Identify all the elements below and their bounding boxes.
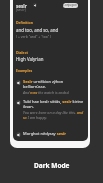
button[interactable]: Play pronunciation	[33, 3, 37, 7]
staticText: You were born on a day like this, and so…	[23, 110, 86, 120]
button[interactable]: Play pronunciation	[16, 80, 21, 85]
staticText: ( + verb "and" + "too" )	[16, 34, 52, 39]
staticText: Conjugation	[63, 3, 78, 8]
button[interactable]: Play pronunciation	[16, 131, 86, 136]
staticText: Examples	[16, 68, 33, 73]
staticText: Dark Mode	[34, 161, 70, 170]
button[interactable]: Play pronunciation	[16, 99, 86, 120]
staticText: [sesiːr]	[16, 8, 26, 12]
staticText: And now the watch is ended.	[23, 90, 70, 95]
staticText: Definition	[16, 20, 33, 25]
staticText: High Valyrian	[16, 56, 44, 62]
staticText: Dialect	[16, 50, 28, 55]
button[interactable]: Conjugation	[63, 3, 78, 8]
button[interactable]: Play pronunciation	[16, 100, 21, 105]
button[interactable]: Play pronunciation	[16, 79, 86, 95]
staticText: Sesīr urnēbion zȳhon belliarrūsse.	[23, 79, 86, 89]
staticText: Morghot nēdyssy sesīr	[23, 131, 67, 136]
button[interactable]: Play pronunciation	[16, 132, 21, 137]
staticText: sesīr	[16, 3, 27, 9]
staticText: Tubī hae kesīr sittās, sesīr kirine iksa…	[23, 99, 86, 109]
staticText: and too, and so, and	[16, 27, 59, 33]
